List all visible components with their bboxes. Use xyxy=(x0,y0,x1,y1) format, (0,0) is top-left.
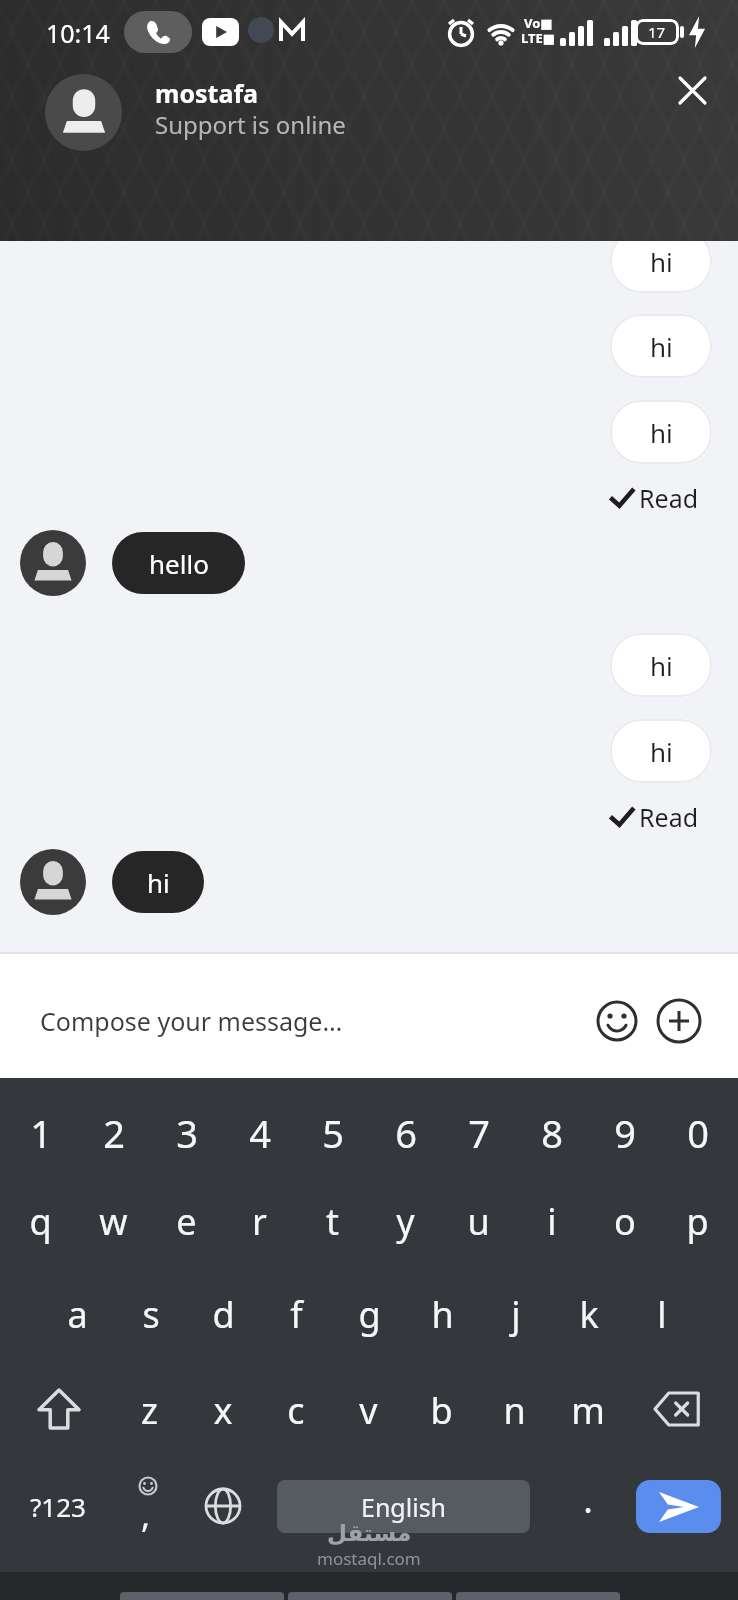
staticText: English xyxy=(361,1490,447,1524)
staticText: p xyxy=(686,1197,709,1246)
staticText: LTE■ xyxy=(521,29,556,47)
button[interactable]: hi xyxy=(610,633,712,697)
button[interactable]: h xyxy=(406,1279,479,1349)
staticText: j xyxy=(511,1290,521,1339)
button[interactable]: 6 xyxy=(369,1098,442,1168)
button[interactable]: x xyxy=(186,1375,259,1445)
button[interactable] xyxy=(645,1378,711,1440)
button[interactable]: 4 xyxy=(223,1098,296,1168)
staticText: u xyxy=(467,1197,490,1246)
staticText: ?123 xyxy=(30,1489,86,1524)
staticText: a xyxy=(67,1290,88,1339)
button[interactable]: c xyxy=(259,1375,332,1445)
button[interactable]: k xyxy=(552,1279,625,1349)
button[interactable]: hi xyxy=(112,851,204,913)
staticText: Compose your message… xyxy=(40,1004,343,1038)
staticText: f xyxy=(290,1290,303,1339)
button[interactable]: p xyxy=(661,1186,734,1256)
staticText: v xyxy=(359,1386,378,1435)
button[interactable]: s xyxy=(114,1279,187,1349)
staticText: l xyxy=(657,1290,667,1339)
button[interactable] xyxy=(196,1475,250,1537)
staticText: x xyxy=(213,1386,233,1435)
staticText: hi xyxy=(147,865,170,900)
button[interactable]: hi xyxy=(610,229,712,293)
staticText: , xyxy=(141,1492,151,1538)
staticText: . xyxy=(583,1475,593,1524)
staticText: Read xyxy=(639,481,699,515)
staticText: 7 xyxy=(468,1107,490,1159)
button[interactable]: g xyxy=(333,1279,406,1349)
button[interactable]: hello xyxy=(112,532,245,594)
button[interactable] xyxy=(636,1480,721,1533)
button[interactable] xyxy=(594,998,640,1044)
staticText: Support is online xyxy=(155,108,346,141)
button[interactable]: , xyxy=(124,1470,174,1540)
button[interactable]: 2 xyxy=(77,1098,150,1168)
staticText: hi xyxy=(650,648,673,683)
button[interactable] xyxy=(655,997,703,1045)
button[interactable]: 5 xyxy=(296,1098,369,1168)
button[interactable]: t xyxy=(296,1186,369,1256)
staticText: hello xyxy=(149,546,209,581)
button[interactable]: q xyxy=(4,1186,77,1256)
staticText: 10:14 xyxy=(46,16,110,50)
staticText: b xyxy=(430,1386,453,1435)
staticText: h xyxy=(431,1290,454,1339)
button[interactable]: 9 xyxy=(588,1098,661,1168)
staticText: mostaql.com xyxy=(317,1547,421,1570)
staticText: r xyxy=(252,1197,267,1246)
button[interactable]: n xyxy=(478,1375,551,1445)
button[interactable]: 1 xyxy=(4,1098,77,1168)
staticText: w xyxy=(99,1197,128,1246)
button[interactable]: w xyxy=(77,1186,150,1256)
staticText: hi xyxy=(650,329,673,364)
button[interactable]: ?123 xyxy=(20,1475,96,1537)
button[interactable]: 3 xyxy=(150,1098,223,1168)
button[interactable]: d xyxy=(187,1279,260,1349)
staticText: q xyxy=(29,1197,52,1246)
staticText: hi xyxy=(650,244,673,279)
button[interactable]: . xyxy=(560,1468,616,1530)
staticText: 8 xyxy=(541,1107,563,1159)
staticText: o xyxy=(614,1197,636,1246)
staticText: e xyxy=(176,1197,197,1246)
staticText: d xyxy=(212,1290,235,1339)
staticText: 1 xyxy=(30,1107,52,1159)
button[interactable]: u xyxy=(442,1186,515,1256)
staticText: 3 xyxy=(176,1107,198,1159)
button[interactable]: o xyxy=(588,1186,661,1256)
button[interactable]: hi xyxy=(610,400,712,464)
button[interactable] xyxy=(30,1378,88,1440)
staticText: 17 xyxy=(648,22,666,42)
staticText: 5 xyxy=(322,1107,344,1159)
button[interactable]: j xyxy=(479,1279,552,1349)
button[interactable] xyxy=(668,66,716,114)
button[interactable]: hi xyxy=(610,314,712,378)
staticText: مستقل xyxy=(327,1520,412,1547)
button[interactable]: 0 xyxy=(661,1098,734,1168)
button[interactable]: a xyxy=(41,1279,114,1349)
button[interactable]: v xyxy=(332,1375,405,1445)
button[interactable]: i xyxy=(515,1186,588,1256)
button[interactable]: l xyxy=(625,1279,698,1349)
staticText: c xyxy=(287,1386,305,1435)
button[interactable]: 7 xyxy=(442,1098,515,1168)
staticText: t xyxy=(326,1197,339,1246)
button[interactable]: hi xyxy=(610,719,712,783)
staticText: k xyxy=(579,1290,599,1339)
button[interactable]: b xyxy=(405,1375,478,1445)
button[interactable]: English xyxy=(277,1480,530,1533)
staticText: Vo■ xyxy=(524,14,553,32)
staticText: mostafa xyxy=(155,76,259,110)
button[interactable]: m xyxy=(551,1375,624,1445)
staticText: z xyxy=(141,1386,158,1435)
button[interactable]: z xyxy=(113,1375,186,1445)
button[interactable]: f xyxy=(260,1279,333,1349)
staticText: 9 xyxy=(614,1107,636,1159)
button[interactable]: r xyxy=(223,1186,296,1256)
button[interactable]: e xyxy=(150,1186,223,1256)
button[interactable]: 8 xyxy=(515,1098,588,1168)
button[interactable]: y xyxy=(369,1186,442,1256)
staticText: y xyxy=(396,1197,415,1246)
